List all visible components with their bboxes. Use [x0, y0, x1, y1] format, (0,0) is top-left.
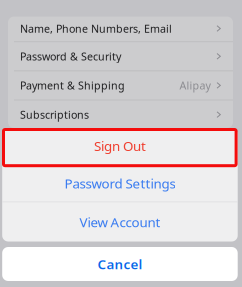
button[interactable]: Password & Security: [8, 42, 233, 70]
staticText: Alipay: [179, 78, 210, 93]
staticText: Name, Phone Numbers, Email: [20, 21, 172, 36]
button[interactable]: View Account: [2, 202, 238, 242]
staticText: View Account: [79, 213, 160, 231]
staticText: Sign Out: [94, 137, 146, 155]
button[interactable]: Password Settings: [2, 165, 238, 201]
button[interactable]: Cancel: [2, 247, 238, 281]
staticText: Payment & Shipping: [20, 78, 125, 93]
button[interactable]: Payment & Shipping: [8, 71, 233, 100]
button[interactable]: Name, Phone Numbers, Email: [8, 16, 233, 41]
staticText: Password Settings: [64, 174, 175, 192]
button[interactable]: Sign Out: [2, 128, 238, 164]
button[interactable]: Subscriptions: [8, 100, 233, 129]
staticText: Cancel: [97, 255, 142, 273]
staticText: Password & Security: [20, 49, 121, 63]
staticText: Subscriptions: [20, 108, 89, 122]
